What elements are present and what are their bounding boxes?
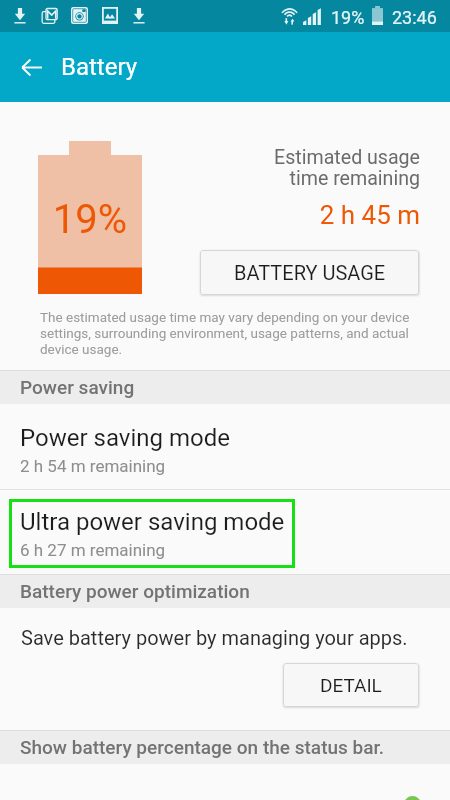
staticText: 19% xyxy=(38,196,142,243)
staticText: Save battery power by managing your apps… xyxy=(21,626,408,649)
staticText: Power saving mode xyxy=(20,424,230,452)
button[interactable]: DETAIL xyxy=(283,663,419,707)
staticText: Estimated usage time remaining xyxy=(199,148,420,190)
staticText: 23:46 xyxy=(392,7,437,28)
staticText: 2 h 54 m remaining xyxy=(20,456,166,476)
staticText: The estimated usage time may vary depend… xyxy=(40,309,438,357)
staticText: 2 h 45 m xyxy=(199,200,420,230)
staticText: Battery xyxy=(61,53,138,81)
button[interactable]: Ultra power saving mode xyxy=(0,490,450,570)
button[interactable]: BATTERY USAGE xyxy=(200,250,419,295)
staticText: BATTERY USAGE xyxy=(234,261,386,284)
staticText: Show battery percentage on the status ba… xyxy=(20,736,384,758)
staticText: DETAIL xyxy=(320,674,382,696)
staticText: 6 h 27 m remaining xyxy=(20,540,166,560)
staticText: 19% xyxy=(331,7,365,28)
button[interactable]: Navigate up xyxy=(8,44,54,90)
button[interactable]: Show battery percentage toggle xyxy=(404,796,421,800)
staticText: Ultra power saving mode xyxy=(20,508,285,536)
staticText: Power saving xyxy=(20,376,135,398)
staticText: Battery power optimization xyxy=(20,580,250,602)
button[interactable]: Power saving mode xyxy=(0,404,450,489)
